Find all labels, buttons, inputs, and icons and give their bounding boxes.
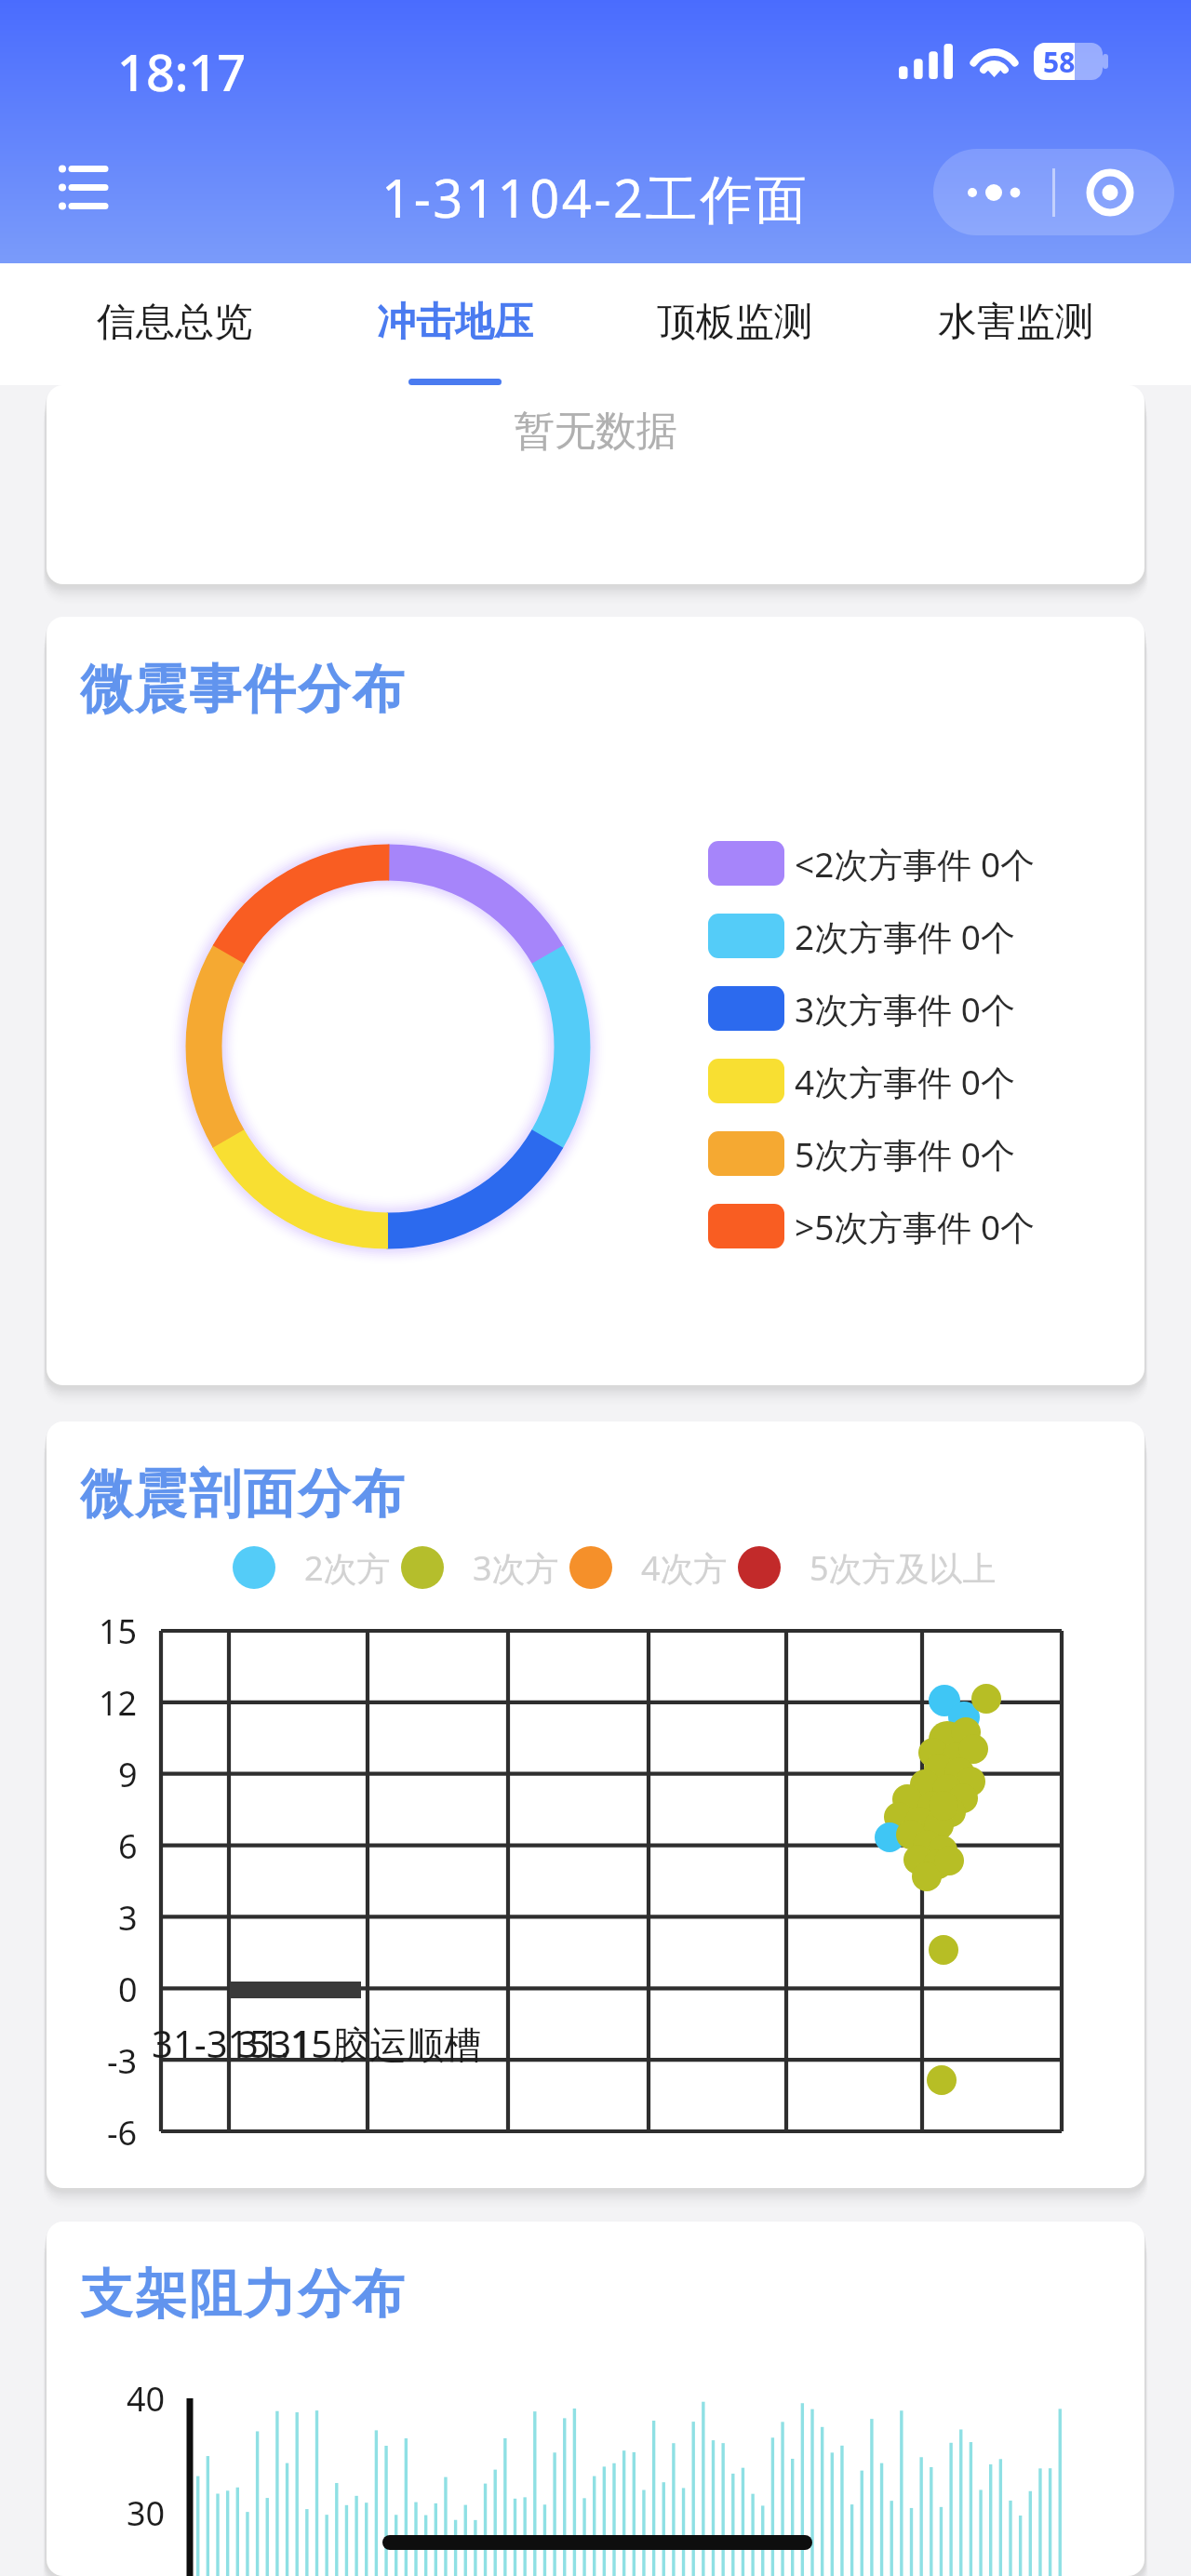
staticText: 9 [118, 1752, 138, 1797]
staticText: 2次方 [304, 1545, 391, 1590]
staticText: 顶板监测 [657, 298, 813, 347]
staticText: 6 [118, 1823, 138, 1869]
staticText: 4次方 [641, 1545, 728, 1590]
staticText: 30 [127, 2490, 166, 2536]
staticText: 5次方事件 0个 [795, 1130, 1015, 1178]
staticText: 31-31531 [152, 2018, 314, 2068]
staticText: 冲击地压 [377, 298, 533, 347]
staticText: 12 [99, 1680, 138, 1726]
staticText: -6 [107, 2110, 138, 2156]
staticText: 4次方事件 0个 [795, 1058, 1015, 1105]
staticText: <2次方事件 0个 [795, 840, 1036, 888]
staticText: 15 [99, 1608, 138, 1654]
staticText: 微震事件分布 [79, 657, 406, 723]
staticText: 31.15胶运顺槽 [237, 2018, 482, 2069]
button[interactable]: 信息总览 [34, 263, 314, 385]
staticText: 18:17 [117, 37, 247, 106]
staticText: >5次方事件 0个 [795, 1203, 1036, 1250]
button[interactable]: More options [933, 149, 1174, 235]
staticText: 1-31104-2工作面 [381, 162, 810, 233]
staticText: -3 [107, 2038, 138, 2084]
staticText: 3 [118, 1895, 138, 1941]
staticText: 微震剖面分布 [79, 1462, 406, 1528]
staticText: 水害监测 [938, 298, 1094, 347]
staticText: 3次方 [473, 1545, 559, 1590]
staticText: 5次方及以上 [810, 1545, 997, 1590]
staticText: 信息总览 [97, 298, 253, 347]
button[interactable]: Menu [51, 158, 113, 216]
button[interactable]: 顶板监测 [595, 263, 876, 385]
button[interactable]: 冲击地压 [314, 263, 595, 385]
staticText: 0 [118, 1967, 138, 2012]
staticText: 2次方事件 0个 [795, 913, 1015, 960]
staticText: 暂无数据 [514, 406, 677, 457]
staticText: 支架阻力分布 [79, 2262, 406, 2328]
staticText: 58 [1043, 43, 1076, 80]
button[interactable]: 水害监测 [876, 263, 1157, 385]
staticText: 40 [127, 2376, 166, 2422]
staticText: 3次方事件 0个 [795, 985, 1015, 1033]
